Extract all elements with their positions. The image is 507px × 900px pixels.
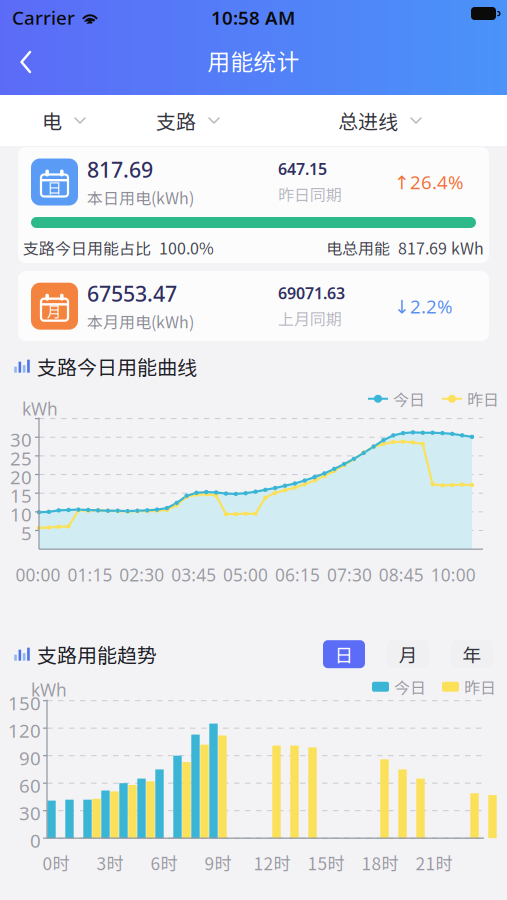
- button[interactable]: 年: [451, 640, 493, 668]
- staticText: 647.15: [278, 158, 327, 179]
- staticText: 15时: [307, 850, 344, 875]
- staticText: 昨日: [464, 675, 496, 698]
- staticText: 0: [30, 828, 41, 853]
- staticText: 昨日: [467, 387, 499, 410]
- staticText: 支路今日用能占比 100.0%: [23, 236, 214, 259]
- staticText: 67553.47: [87, 279, 177, 308]
- staticText: 本日用电(kWh): [87, 186, 194, 209]
- staticText: 12时: [253, 850, 290, 875]
- staticText: 30: [19, 801, 41, 825]
- staticText: 60: [19, 773, 41, 798]
- staticText: 总进线: [338, 106, 398, 135]
- staticText: 用能统计: [207, 44, 299, 77]
- staticText: 150: [8, 691, 41, 715]
- staticText: 9时: [204, 850, 231, 875]
- staticText: 10:00: [431, 563, 476, 586]
- button[interactable]: 总进线: [327, 95, 433, 146]
- staticText: 月: [47, 300, 62, 322]
- staticText: 00:00: [15, 563, 60, 586]
- staticText: 20: [10, 464, 32, 489]
- staticText: 日: [334, 641, 353, 668]
- staticText: kWh: [31, 678, 67, 701]
- staticText: 15: [10, 483, 32, 508]
- staticText: 6时: [150, 850, 177, 875]
- staticText: 18时: [361, 850, 398, 875]
- staticText: 03:45: [171, 563, 216, 586]
- staticText: 电: [42, 106, 62, 135]
- button[interactable]: 日: [323, 640, 365, 668]
- staticText: 本月用电(kWh): [87, 310, 194, 333]
- button[interactable]: Back: [5, 40, 49, 84]
- staticText: 25: [10, 446, 32, 471]
- staticText: 817.69: [87, 155, 153, 184]
- staticText: ↓2.2%: [394, 294, 453, 319]
- staticText: 30: [10, 427, 32, 452]
- staticText: 05:00: [223, 563, 268, 586]
- button[interactable]: 电: [31, 95, 97, 146]
- staticText: kWh: [22, 397, 58, 420]
- staticText: 06:15: [275, 563, 320, 586]
- staticText: 10:58 AM: [211, 5, 295, 30]
- staticText: 电总用能 817.69 kWh: [326, 236, 484, 259]
- staticText: 支路用能趋势: [37, 640, 157, 669]
- button[interactable]: 月: [387, 640, 429, 668]
- staticText: 上月同期: [278, 307, 342, 330]
- staticText: 日: [47, 176, 62, 198]
- staticText: 3时: [96, 850, 123, 875]
- staticText: 0时: [42, 850, 69, 875]
- staticText: 21时: [415, 850, 452, 875]
- button[interactable]: 支路: [145, 95, 231, 146]
- staticText: 120: [8, 718, 41, 743]
- staticText: Carrier: [12, 5, 75, 30]
- staticText: 昨日同期: [278, 182, 342, 206]
- staticText: 支路今日用能曲线: [37, 352, 197, 381]
- staticText: 08:45: [379, 563, 424, 586]
- staticText: 支路: [156, 106, 196, 135]
- staticText: ↑26.4%: [394, 170, 464, 194]
- staticText: 今日: [393, 387, 425, 410]
- staticText: 今日: [394, 675, 426, 698]
- staticText: 10: [10, 502, 32, 527]
- staticText: 69071.63: [278, 282, 345, 304]
- staticText: 01:15: [67, 563, 112, 586]
- staticText: 02:30: [119, 563, 164, 586]
- staticText: 90: [19, 746, 41, 770]
- staticText: 月: [398, 641, 417, 668]
- staticText: 5: [21, 520, 32, 545]
- staticText: 07:30: [327, 563, 372, 586]
- staticText: 年: [462, 641, 481, 668]
